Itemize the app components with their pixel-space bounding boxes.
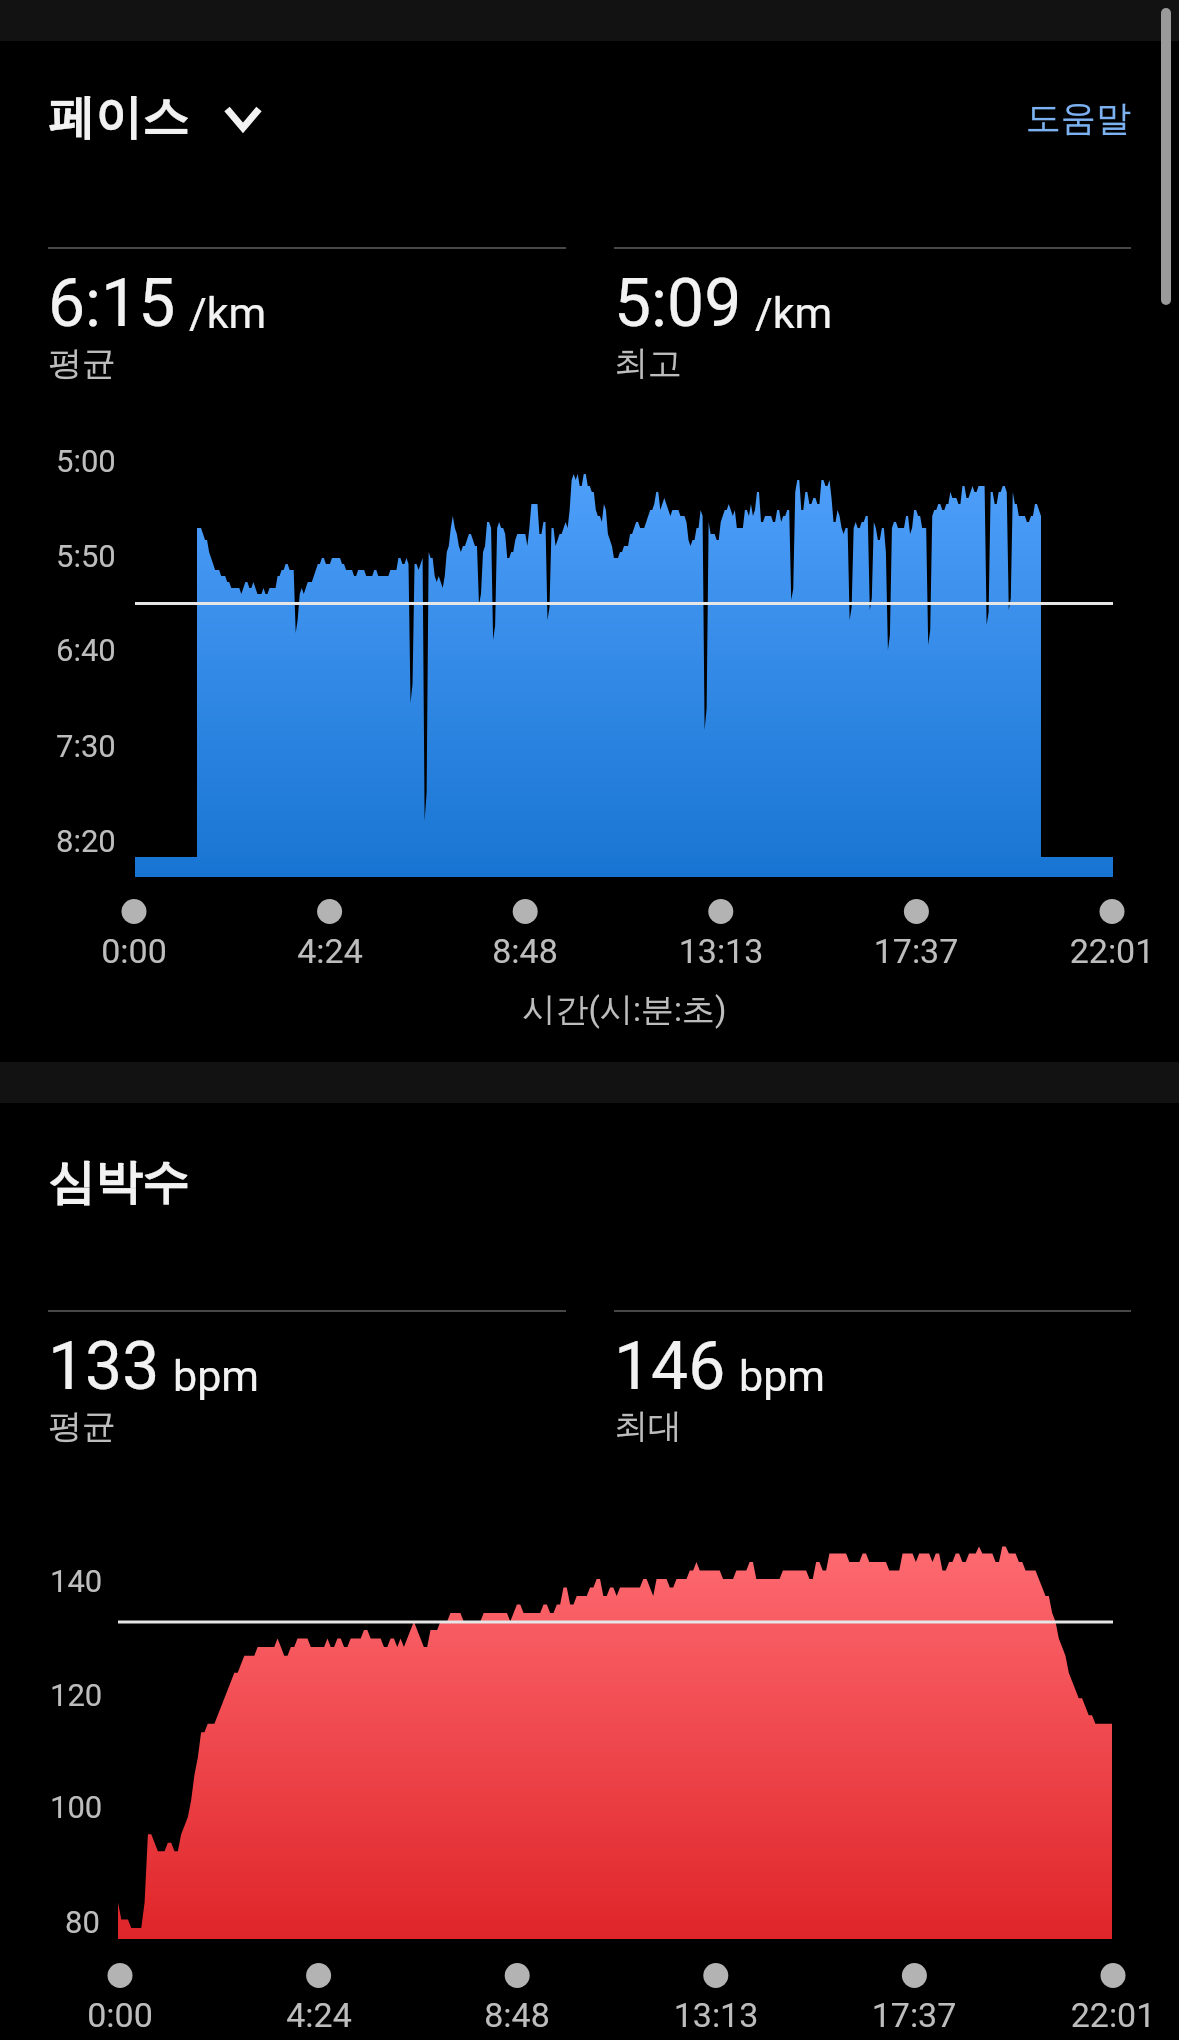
staticText: 7:30 bbox=[56, 728, 116, 764]
staticText: 6:15 bbox=[48, 265, 176, 342]
staticText: 13:13 bbox=[631, 931, 811, 971]
staticText: 100 bbox=[50, 1789, 103, 1825]
staticText: 심박수 bbox=[48, 1153, 189, 1212]
staticText: 6:40 bbox=[56, 632, 116, 668]
staticText: 시간(시:분:초) bbox=[35, 989, 1179, 1031]
button[interactable]: 6:15 bbox=[48, 247, 566, 385]
staticText: 17:37 bbox=[824, 1995, 1004, 2035]
button[interactable]: 5:09 bbox=[614, 247, 1131, 385]
staticText: 평균 bbox=[48, 342, 116, 385]
staticText: 120 bbox=[50, 1677, 103, 1713]
staticText: 13:13 bbox=[626, 1995, 806, 2035]
staticText: 80 bbox=[65, 1904, 100, 1940]
staticText: 도움말 bbox=[1026, 96, 1131, 140]
staticText: bpm bbox=[173, 1351, 259, 1401]
staticText: 0:00 bbox=[30, 1995, 210, 2035]
staticText: 22:01 bbox=[1023, 1995, 1179, 2035]
staticText: 146 bbox=[614, 1328, 726, 1405]
staticText: 페이스 bbox=[48, 88, 189, 147]
staticText: 140 bbox=[50, 1563, 103, 1599]
staticText: 4:24 bbox=[229, 1995, 409, 2035]
button[interactable]: 146 bbox=[614, 1310, 1131, 1448]
button[interactable]: 도움말 bbox=[1024, 92, 1133, 144]
staticText: 8:48 bbox=[435, 931, 615, 971]
staticText: 평균 bbox=[48, 1405, 116, 1448]
staticText: 8:20 bbox=[56, 823, 116, 859]
button[interactable]: 페이스 측정 항목 선택 bbox=[48, 88, 263, 147]
staticText: 8:48 bbox=[427, 1995, 607, 2035]
staticText: 133 bbox=[48, 1328, 160, 1405]
staticText: bpm bbox=[739, 1351, 825, 1401]
staticText: 4:24 bbox=[240, 931, 420, 971]
staticText: 17:37 bbox=[826, 931, 1006, 971]
button[interactable]: 133 bbox=[48, 1310, 566, 1448]
staticText: 5:09 bbox=[614, 265, 742, 342]
staticText: 22:01 bbox=[1022, 931, 1179, 971]
staticText: 최고 bbox=[614, 342, 682, 385]
staticText: 5:50 bbox=[56, 538, 116, 574]
staticText: 최대 bbox=[614, 1405, 682, 1448]
staticText: /km bbox=[189, 288, 267, 338]
staticText: /km bbox=[755, 288, 833, 338]
staticText: 0:00 bbox=[44, 931, 224, 971]
staticText: 5:00 bbox=[56, 443, 116, 479]
